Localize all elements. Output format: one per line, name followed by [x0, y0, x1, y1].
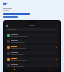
button[interactable] [6, 39, 58, 43]
button[interactable] [6, 45, 58, 49]
button[interactable] [6, 33, 58, 37]
button[interactable]: Chats [25, 68, 28, 71]
button[interactable]: Settings [48, 68, 51, 71]
button[interactable] [6, 51, 58, 55]
button[interactable]: Logo [3, 2, 8, 5]
button[interactable] [6, 57, 58, 61]
button[interactable] [6, 63, 58, 67]
button[interactable]: Home [13, 68, 16, 71]
button[interactable]: Calls [36, 68, 39, 71]
button[interactable]: Search [6, 28, 58, 31]
